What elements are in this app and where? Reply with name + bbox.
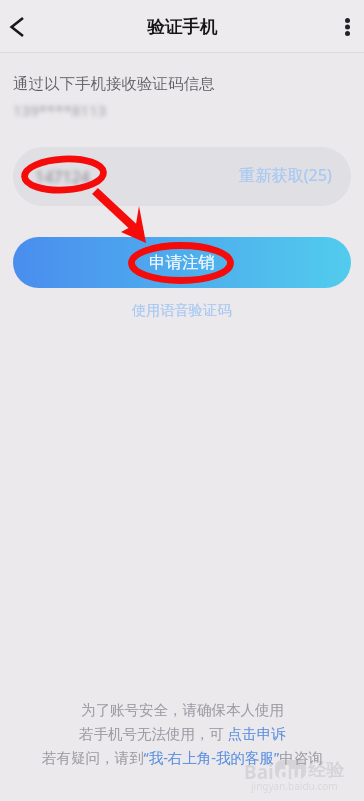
staticText: 重新获取(25) xyxy=(239,164,332,186)
staticText: 通过以下手机接收验证码信息 xyxy=(13,74,215,94)
staticText: 申请注销 xyxy=(149,252,215,273)
staticText: 为了账号安全，请确保本人使用 xyxy=(81,701,284,719)
staticText: Bai xyxy=(244,759,274,779)
button[interactable]: 若有疑问，请到“我-右上角-我的客服”中咨询 xyxy=(42,747,323,767)
staticText: 验证手机 xyxy=(147,16,217,38)
staticText: du xyxy=(278,760,303,779)
button[interactable]: 申请注销 xyxy=(13,237,351,288)
button[interactable]: More options xyxy=(330,0,364,53)
staticText: 139****8113 xyxy=(13,100,107,120)
staticText: 147124 xyxy=(35,166,90,188)
button[interactable]: Back xyxy=(0,0,40,53)
staticText: 经验 xyxy=(308,759,344,779)
button[interactable]: 147124 xyxy=(13,147,351,206)
button[interactable]: 使用语音验证码 xyxy=(132,301,232,319)
staticText: jingyan.baidu.com xyxy=(251,779,338,793)
button[interactable]: 若手机号无法使用，可 点击申诉 xyxy=(79,723,286,743)
